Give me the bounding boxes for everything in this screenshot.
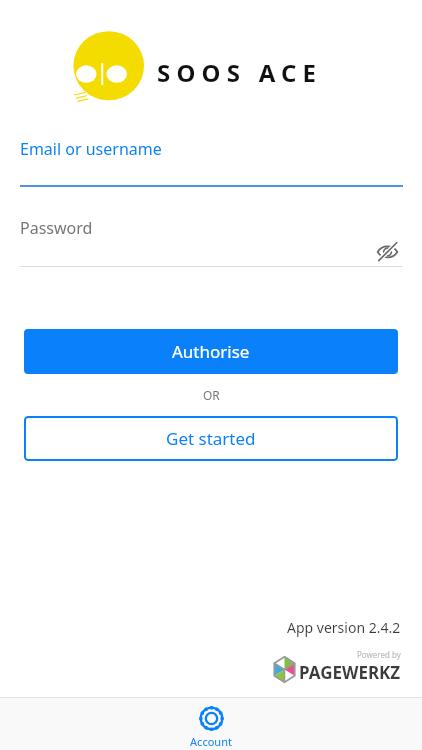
staticText: Get started — [166, 427, 256, 450]
staticText: Email or username — [20, 138, 162, 160]
button[interactable]: Authorise — [24, 329, 398, 374]
staticText: Powered by — [357, 649, 401, 660]
staticText: Account — [190, 734, 232, 749]
staticText: OR — [203, 387, 220, 403]
staticText: Authorise — [172, 340, 250, 363]
staticText: App version 2.4.2 — [287, 618, 401, 637]
button[interactable]: Get started — [24, 416, 398, 461]
staticText: PAGEWERKZ — [299, 661, 401, 684]
staticText: SOOS ACE — [157, 56, 323, 89]
button[interactable] — [0, 209, 422, 272]
button[interactable]: Email or username — [0, 130, 422, 192]
staticText: Password — [20, 217, 93, 239]
button[interactable]: Account — [0, 698, 422, 750]
button[interactable]: Show password — [366, 230, 408, 272]
